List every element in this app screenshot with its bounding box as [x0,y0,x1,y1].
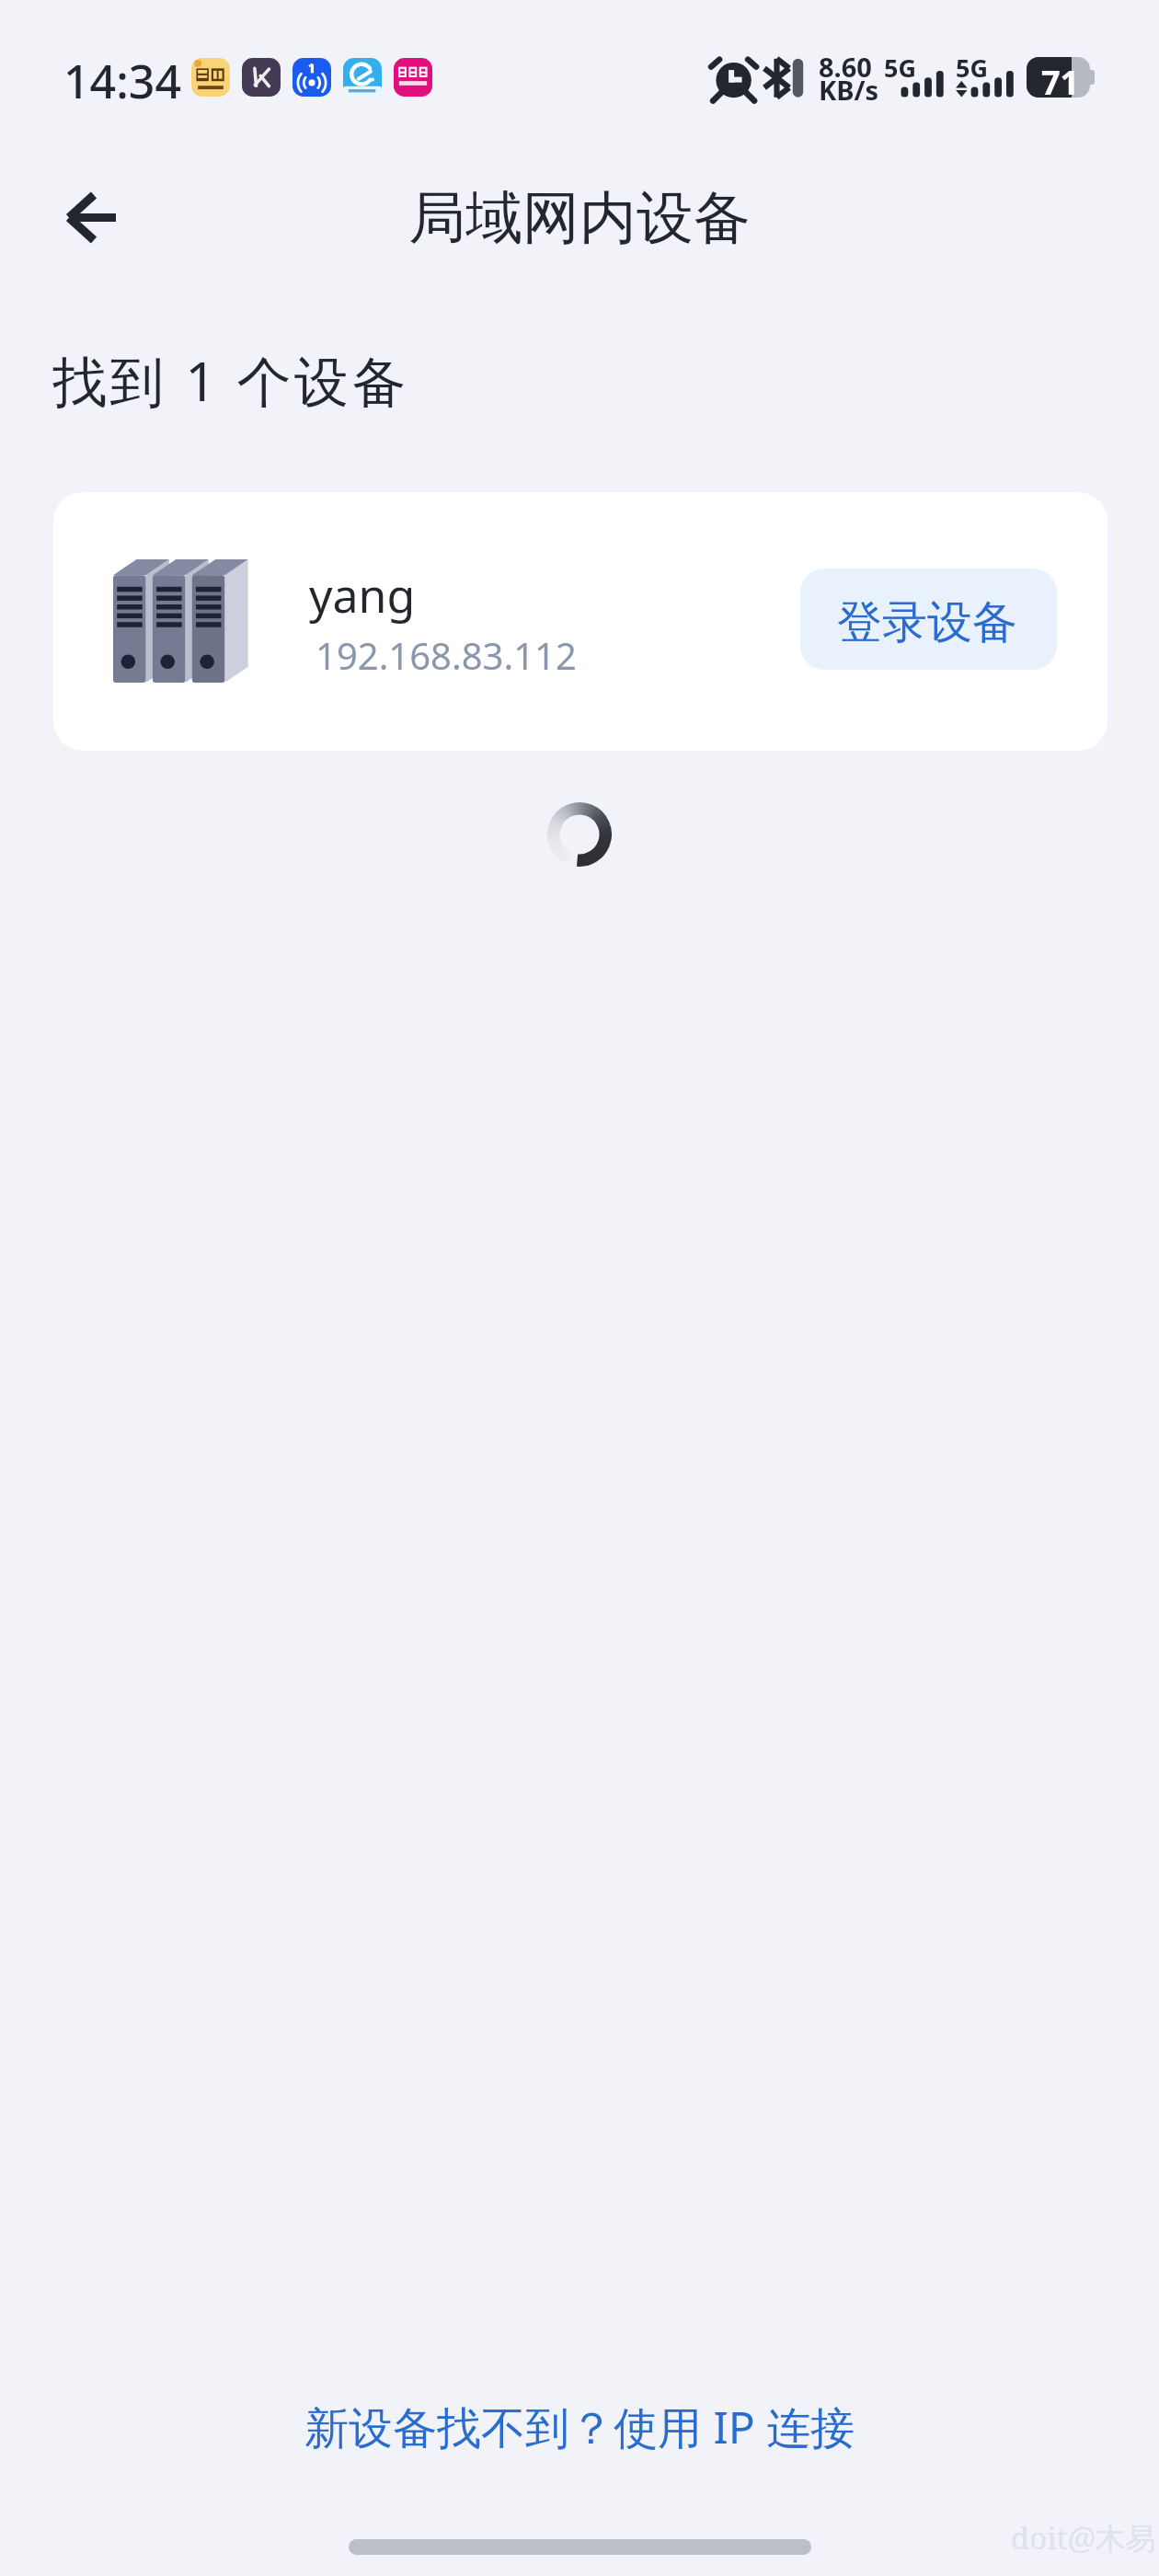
button[interactable]: yang [53,492,1107,751]
staticText: 8.60 [819,49,872,85]
staticText: yang [309,564,416,627]
button[interactable]: 新设备找不到？使用 IP 连接 [282,2378,878,2476]
staticText: 新设备找不到？使用 IP 连接 [304,2397,855,2457]
staticText: KB/s [819,72,879,108]
button[interactable]: Back [37,164,143,270]
staticText: 5G [956,51,988,85]
staticText: 14:34 [63,50,181,112]
button[interactable]: 登录设备 [800,569,1057,670]
staticText: doit@木易 [1011,2517,1156,2559]
staticText: 局域网内设备 [408,182,751,254]
staticText: 71 [1041,60,1080,100]
staticText: 192.168.83.112 [316,630,577,680]
staticText: 5G [884,51,916,85]
staticText: 找到 1 个设备 [52,343,410,418]
staticText: 登录设备 [837,594,1017,651]
other: Scanning [547,802,612,867]
